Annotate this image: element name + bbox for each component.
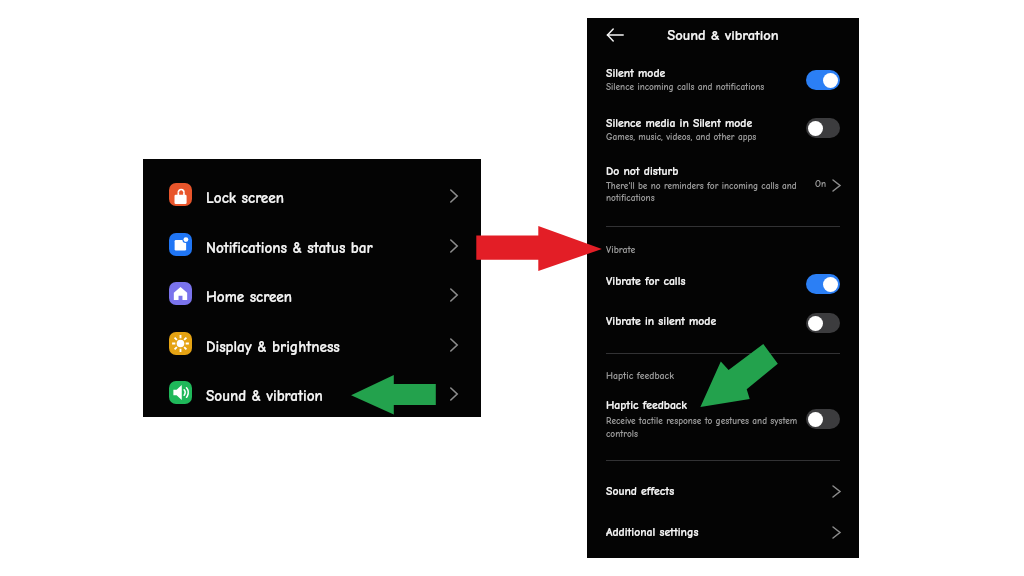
staticText: Display & brightness xyxy=(206,338,340,355)
button[interactable]: Switch off xyxy=(806,313,840,333)
button[interactable] xyxy=(587,480,859,516)
button[interactable] xyxy=(587,158,859,210)
staticText: Silent mode xyxy=(606,66,666,79)
staticText: Sound & vibration xyxy=(206,387,323,404)
button[interactable] xyxy=(587,110,859,152)
button[interactable]: Home screen xyxy=(143,273,481,322)
button[interactable]: Notifications & status bar xyxy=(143,224,481,273)
button[interactable]: Switch off xyxy=(806,118,840,138)
button[interactable]: Switch on xyxy=(806,70,840,90)
staticText: On xyxy=(815,179,826,190)
staticText: Vibrate for calls xyxy=(606,274,686,287)
staticText: Vibrate in silent mode xyxy=(606,314,717,327)
button[interactable]: Sound & vibration xyxy=(143,372,481,421)
button[interactable]: Lock screen xyxy=(143,174,481,223)
button[interactable]: Switch on xyxy=(806,274,840,294)
staticText: Do not disturb xyxy=(606,164,679,177)
staticText: Sound effects xyxy=(606,484,675,497)
staticText: Haptic feedback xyxy=(606,398,688,411)
staticText: Notifications & status bar xyxy=(206,239,373,256)
button[interactable] xyxy=(587,310,859,346)
staticText: There'll be no reminders for incoming ca… xyxy=(606,181,797,192)
button[interactable] xyxy=(587,60,859,102)
staticText: Lock screen xyxy=(206,189,285,206)
staticText: Receive tactile response to gestures and… xyxy=(606,416,798,427)
button[interactable]: Back xyxy=(599,23,627,51)
button[interactable] xyxy=(587,270,859,306)
staticText: Games, music, videos, and other apps xyxy=(606,132,757,143)
staticText: controls xyxy=(606,429,638,440)
staticText: Haptic feedback xyxy=(606,370,674,381)
staticText: Additional settings xyxy=(606,525,699,538)
button[interactable]: Display & brightness xyxy=(143,323,481,372)
staticText: Silence incoming calls and notifications xyxy=(606,82,765,93)
button[interactable] xyxy=(587,394,859,442)
button[interactable] xyxy=(587,520,859,556)
staticText: Home screen xyxy=(206,288,293,305)
staticText: Silence media in Silent mode xyxy=(606,116,753,129)
staticText: notifications xyxy=(606,193,655,204)
staticText: Sound & vibration xyxy=(587,27,859,44)
button[interactable]: Switch off xyxy=(806,409,840,429)
staticText: Vibrate xyxy=(606,244,636,255)
